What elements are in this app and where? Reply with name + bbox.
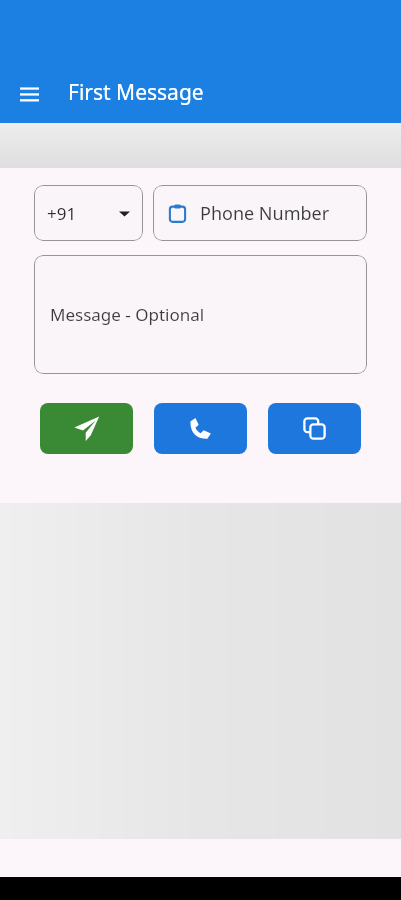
button[interactable]: Send message (40, 403, 133, 454)
button[interactable]: Phone Number (153, 185, 367, 241)
button[interactable]: Open navigation menu (10, 74, 48, 112)
staticText: Phone Number (200, 201, 330, 226)
button[interactable]: Copy (268, 403, 361, 454)
button[interactable]: Call (154, 403, 247, 454)
button[interactable]: Message - Optional (34, 255, 367, 374)
staticText: Message - Optional (50, 303, 205, 326)
staticText: First Message (68, 78, 204, 107)
staticText: +91 (47, 202, 77, 225)
button[interactable]: +91 (34, 185, 143, 241)
